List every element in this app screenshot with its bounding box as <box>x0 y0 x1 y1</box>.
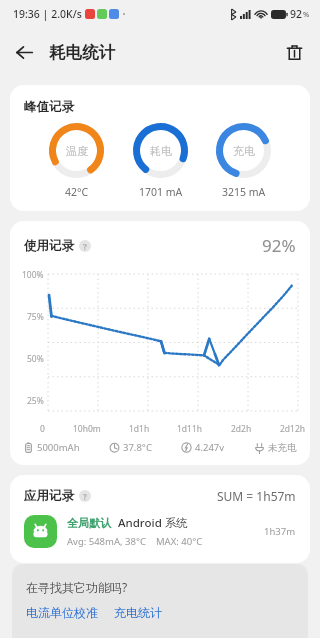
staticText: 耗电 <box>150 144 172 158</box>
button[interactable]: Help <box>79 490 91 502</box>
staticText: 1701 mA <box>139 185 183 199</box>
button[interactable]: Help <box>79 240 91 252</box>
button[interactable]: 电流单位校准 <box>26 605 98 620</box>
staticText: 使用记录 <box>24 238 74 254</box>
staticText: 电流单位校准 <box>26 605 98 620</box>
staticText: 4.247v <box>195 441 225 454</box>
staticText: 1d1h <box>129 423 150 435</box>
staticText: SUM = 1h57m <box>217 488 296 504</box>
button[interactable]: Delete records <box>276 34 312 70</box>
staticText: 100% <box>22 269 44 281</box>
staticText: 峰值记录 <box>24 99 74 115</box>
staticText: 充电 <box>233 144 255 158</box>
staticText: 50% <box>27 353 44 365</box>
staticText: ? <box>83 491 87 502</box>
staticText: 全局默认 <box>67 516 111 530</box>
staticText: ? <box>83 241 87 252</box>
staticText: 耗电统计 <box>49 42 115 63</box>
staticText: MAX: 40°C <box>156 535 203 548</box>
staticText: 5000mAh <box>37 441 80 454</box>
staticText: 25% <box>27 395 44 407</box>
staticText: 未充电 <box>268 442 297 454</box>
staticText: Avg: 548mA, 38°C <box>67 535 146 548</box>
staticText: 42°C <box>65 185 89 199</box>
button[interactable]: Back <box>6 34 42 70</box>
staticText: 温度 <box>66 144 88 158</box>
staticText: 19:36 | 2.0K/s <box>13 7 82 21</box>
staticText: 2d12h <box>280 423 306 435</box>
staticText: 2d2h <box>231 423 252 435</box>
staticText: 在寻找其它功能吗? <box>26 579 128 595</box>
staticText: 充电统计 <box>114 605 162 620</box>
staticText: 37.8°C <box>123 441 152 454</box>
staticText: 应用记录 <box>24 488 74 504</box>
staticText: 92% <box>262 234 296 257</box>
staticText: 1h37m <box>264 525 296 538</box>
staticText: 75% <box>27 311 44 323</box>
staticText: 3215 mA <box>222 185 266 199</box>
button[interactable]: 全局默认 <box>10 513 310 550</box>
staticText: 1d11h <box>177 423 203 435</box>
button[interactable]: 充电统计 <box>114 605 162 620</box>
staticText: Android 系统 <box>118 515 188 531</box>
staticText: 92 <box>290 7 303 21</box>
staticText: 0 <box>40 423 45 435</box>
staticText: 10h0m <box>73 423 101 435</box>
staticText: % <box>303 9 310 19</box>
